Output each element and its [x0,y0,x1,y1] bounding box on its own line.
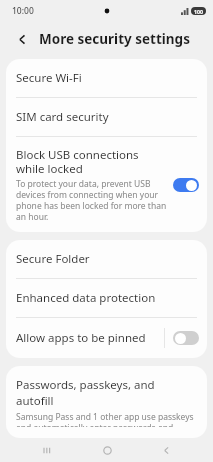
staticText: 10:00 [12,5,34,17]
button[interactable]: Passwords, passkeys, and autofill [6,366,207,438]
button[interactable]: Back [154,438,178,462]
button[interactable]: Allow apps to be pinned [6,318,207,358]
staticText: Enhanced data protection [16,290,156,306]
button[interactable]: Toggle off [173,331,199,345]
staticText: 100 [194,8,203,15]
button[interactable]: SIM card security [6,98,207,136]
staticText: Block USB connections while locked [16,147,167,176]
button[interactable]: Enhanced data protection [6,279,207,317]
staticText: Passwords, passkeys, and autofill [16,377,195,409]
button[interactable]: Recents [35,438,59,462]
button[interactable]: Secure Folder [6,240,207,278]
button[interactable]: Block USB connections while locked [6,137,207,232]
staticText: Samsung Pass and 1 other app use passkey… [16,411,195,427]
staticText: Allow apps to be pinned [16,330,146,346]
button[interactable]: Back [12,29,32,49]
staticText: Secure Folder [16,251,90,267]
staticText: Secure Wi-Fi [16,70,82,86]
button[interactable]: Secure Wi-Fi [6,59,207,97]
staticText: More security settings [39,30,190,48]
button[interactable]: Toggle on [173,178,199,192]
button[interactable]: Home [95,438,119,462]
staticText: To protect your data, prevent USB device… [16,178,167,222]
staticText: SIM card security [16,109,109,125]
